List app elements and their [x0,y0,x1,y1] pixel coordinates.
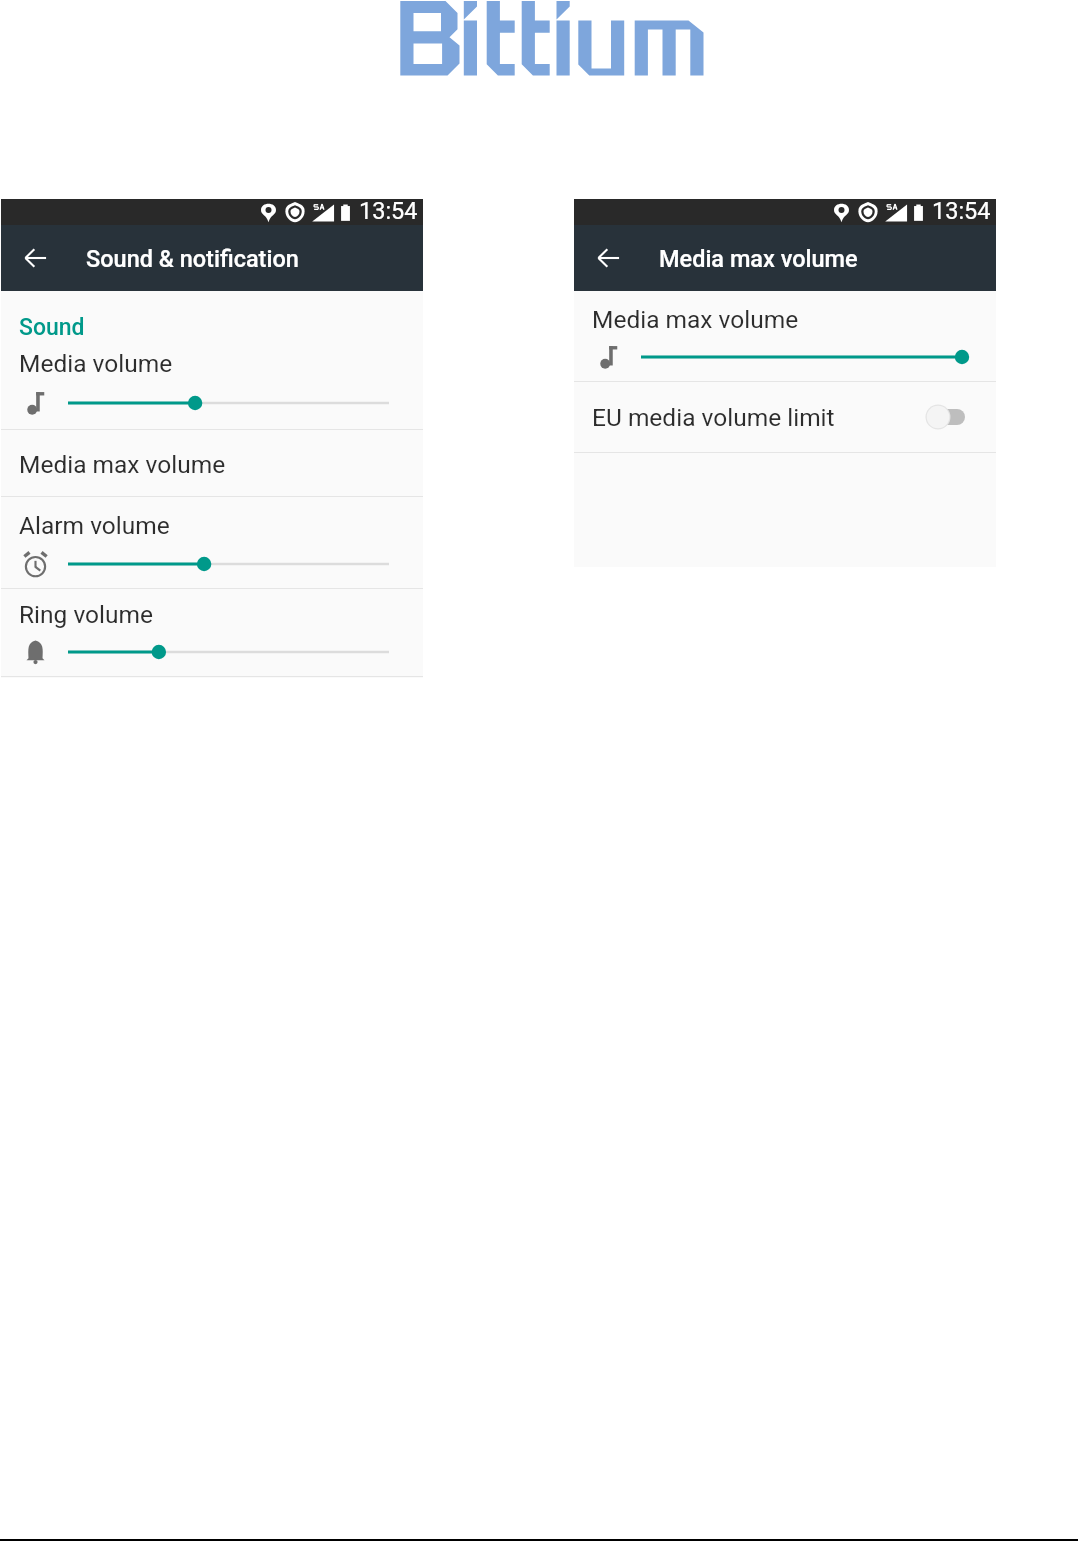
button[interactable]: Alarm volume [1,497,423,588]
staticText: Media max volume [659,245,858,273]
button[interactable]: Sound [1,291,423,429]
button[interactable]: Back [1,225,70,291]
staticText: Sound & notification [86,245,299,273]
button[interactable]: Ring volume [1,589,423,676]
staticText: Alarm volume [19,511,170,540]
button[interactable]: Back [574,225,643,291]
staticText: Media volume [19,349,173,378]
button[interactable]: Media max volume [1,430,423,496]
staticText: 13:54 [932,197,991,223]
staticText: EU media volume limit [592,403,925,432]
staticText: Media max volume [592,305,799,334]
staticText: 13:54 [359,197,418,223]
button[interactable]: EU media volume limit, off [925,397,965,437]
staticText: Ring volume [19,600,154,629]
staticText: Sound [19,314,85,341]
staticText: Media max volume [19,450,226,479]
button[interactable]: EU media volume limit [574,382,996,452]
button[interactable]: Media max volume [574,291,996,381]
